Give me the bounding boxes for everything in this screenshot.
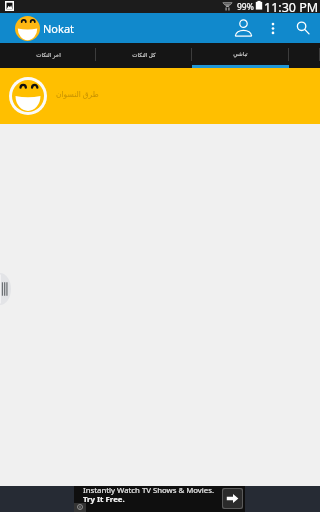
button[interactable]: تباشي bbox=[192, 43, 289, 68]
staticText: Try It Free. bbox=[83, 494, 125, 505]
button[interactable]: Account bbox=[226, 13, 260, 43]
staticText: Instantly Watch TV Shows & Movies. bbox=[83, 485, 215, 496]
staticText: طرق النسوان bbox=[56, 89, 99, 99]
button[interactable]: اخر النكات bbox=[0, 43, 96, 68]
button[interactable]: Open drawer bbox=[0, 273, 11, 305]
button[interactable]: Instantly Watch TV Shows & Movies. bbox=[0, 486, 320, 512]
staticText: اخر النكات bbox=[36, 51, 61, 59]
staticText: تباشي bbox=[233, 51, 248, 58]
staticText: 11:30 PM bbox=[264, 0, 319, 12]
button[interactable]: Search bbox=[286, 13, 320, 43]
staticText: كل النكات bbox=[132, 51, 156, 59]
staticText: 99% bbox=[237, 1, 254, 13]
button[interactable]: Open advertisement bbox=[223, 489, 242, 508]
button[interactable]: More options bbox=[260, 13, 286, 43]
staticText: Nokat bbox=[43, 21, 75, 36]
button[interactable]: كل النكات bbox=[96, 43, 192, 68]
button[interactable] bbox=[289, 43, 320, 68]
button[interactable]: طرق النسوان bbox=[0, 68, 320, 124]
